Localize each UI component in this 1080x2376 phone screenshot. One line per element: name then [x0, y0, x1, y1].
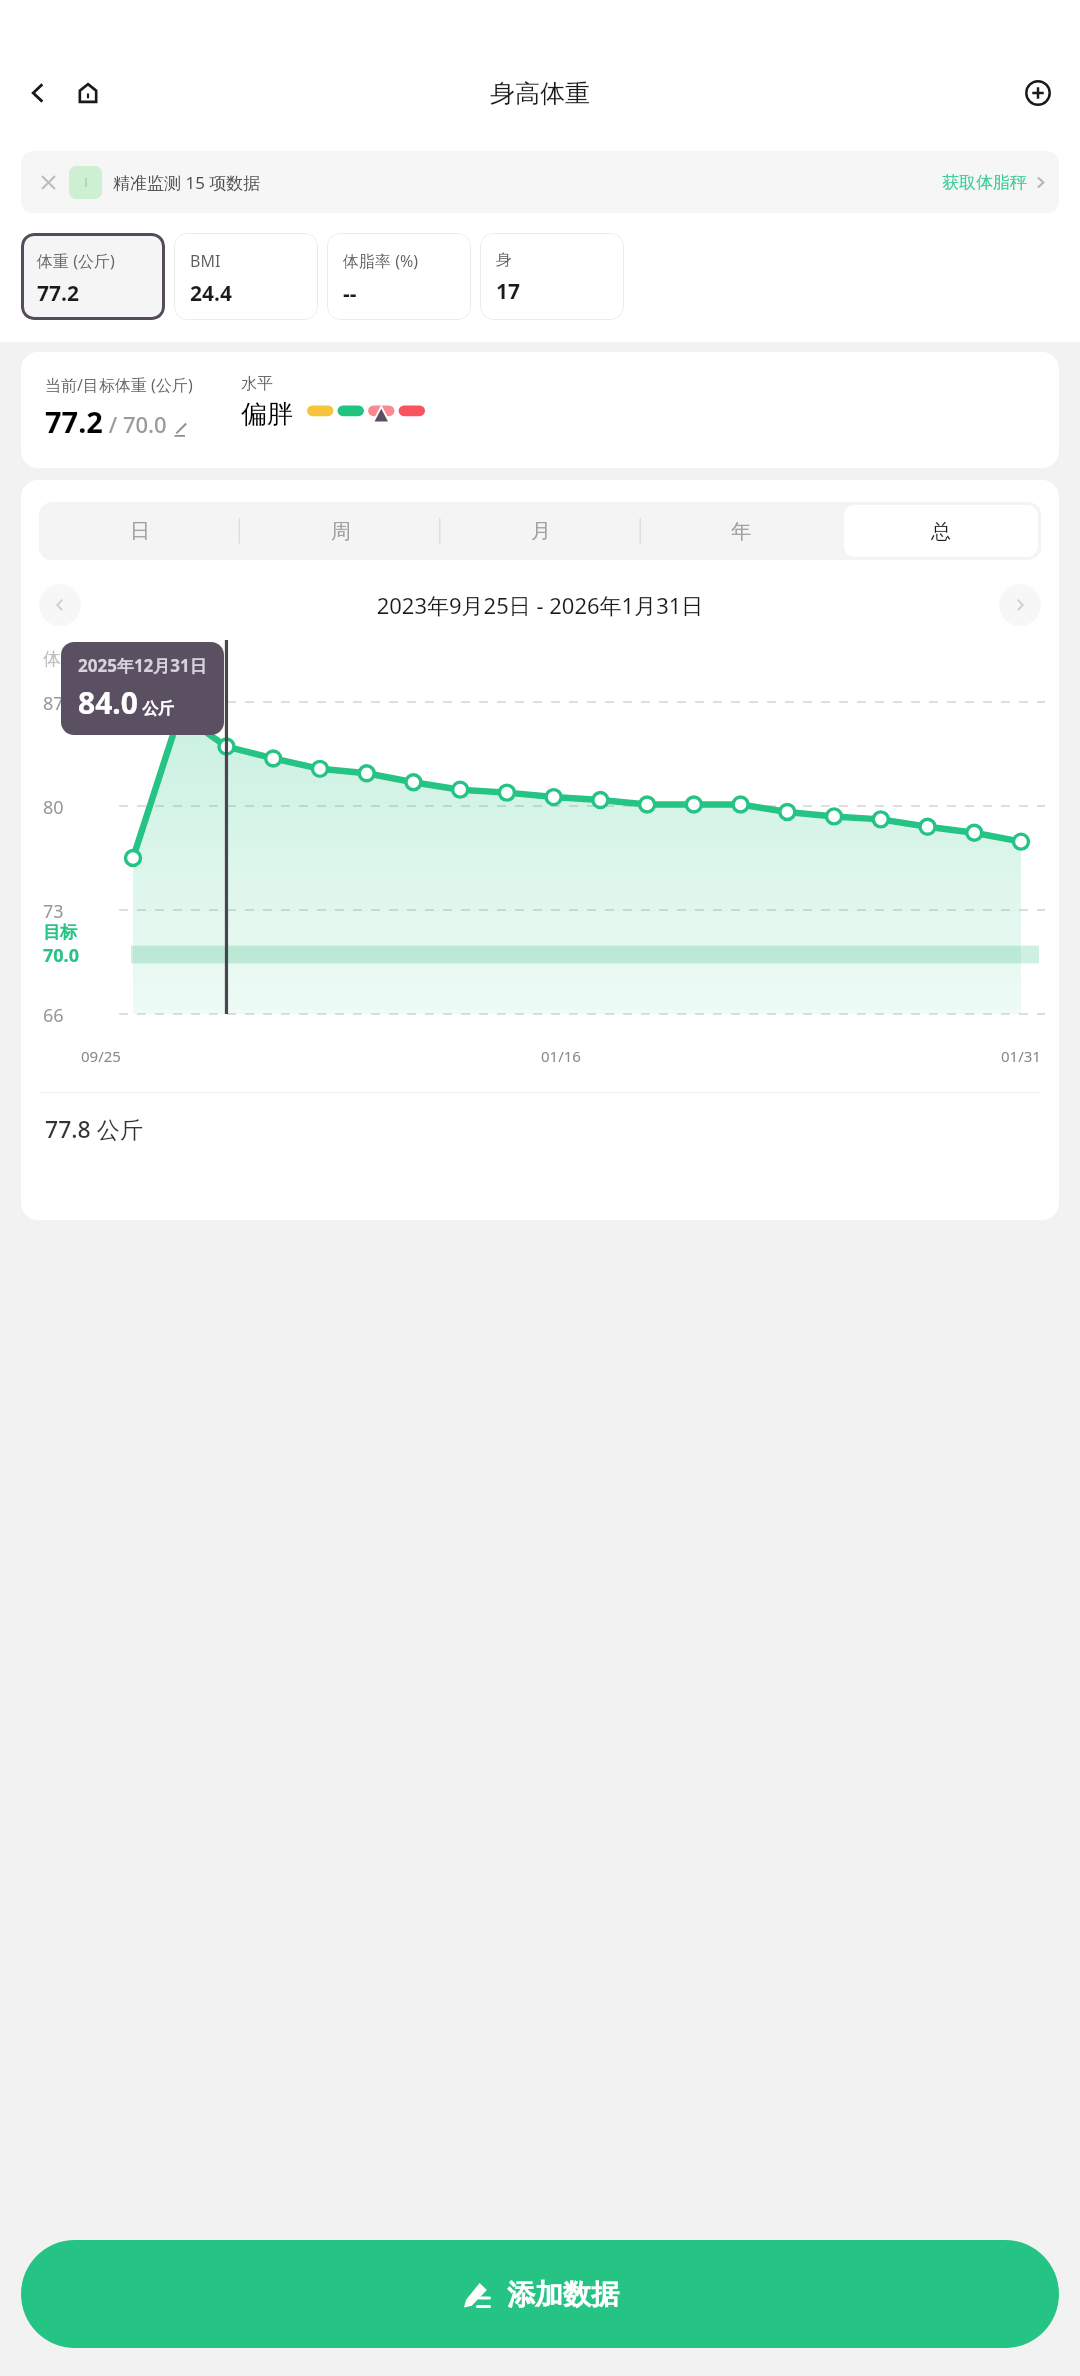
- button[interactable]: BMI: [174, 233, 318, 320]
- button[interactable]: Close: [33, 167, 63, 197]
- staticText: 66: [43, 1003, 64, 1028]
- staticText: 身: [496, 250, 512, 270]
- button[interactable]: Back: [16, 71, 60, 115]
- staticText: 17: [496, 277, 521, 306]
- staticText: 70.0: [43, 943, 79, 968]
- staticText: / 70.0: [103, 409, 167, 439]
- staticText: 年: [731, 519, 751, 544]
- staticText: 获取体脂秤: [942, 172, 1027, 193]
- staticText: 体重 (公斤): [37, 250, 115, 272]
- button[interactable]: Previous: [39, 584, 81, 626]
- staticText: --: [343, 279, 357, 308]
- staticText: 01/16: [541, 1046, 581, 1066]
- button[interactable]: 当前/目标体重 (公斤): [21, 352, 1059, 468]
- button[interactable]: 获取体脂秤: [942, 172, 1047, 193]
- staticText: 添加数据: [507, 2277, 619, 2312]
- button[interactable]: 周: [243, 505, 438, 557]
- staticText: 体脂率 (%): [343, 250, 419, 272]
- staticText: 77.2: [37, 279, 79, 308]
- button[interactable]: 月: [444, 505, 638, 557]
- staticText: 73: [43, 899, 64, 924]
- staticText: 总: [931, 519, 951, 544]
- staticText: 精准监测 15 项数据: [113, 171, 261, 194]
- staticText: 84.0: [78, 682, 138, 723]
- button[interactable]: Next: [999, 584, 1041, 626]
- button[interactable]: 添加数据: [21, 2240, 1059, 2348]
- button[interactable]: 总: [844, 505, 1038, 557]
- staticText: 偏胖: [241, 398, 293, 431]
- staticText: 2025年12月31日: [78, 654, 207, 677]
- staticText: 体重: [43, 648, 79, 671]
- staticText: 目标: [43, 922, 77, 943]
- staticText: 周: [331, 519, 351, 544]
- button[interactable]: 年: [644, 505, 838, 557]
- button[interactable]: 体脂率 (%): [327, 233, 471, 320]
- staticText: 2023年9月25日 - 2026年1月31日: [81, 590, 999, 620]
- staticText: 24.4: [190, 279, 232, 308]
- button[interactable]: Home: [66, 71, 110, 115]
- staticText: 当前/目标体重 (公斤): [45, 374, 193, 396]
- button[interactable]: Close: [21, 151, 1059, 213]
- button[interactable]: 体重 (公斤): [21, 233, 165, 320]
- button[interactable]: 身: [480, 233, 624, 320]
- staticText: 87: [43, 691, 64, 716]
- staticText: 水平: [241, 374, 273, 394]
- button[interactable]: Add: [1016, 71, 1060, 115]
- staticText: 公斤: [138, 697, 175, 719]
- staticText: 77.2: [45, 402, 103, 441]
- staticText: 01/31: [1001, 1046, 1041, 1066]
- staticText: 77.8 公斤: [45, 1113, 143, 1144]
- staticText: 月: [531, 519, 551, 544]
- button[interactable]: 日: [42, 505, 237, 557]
- staticText: 80: [43, 795, 64, 820]
- staticText: 09/25: [81, 1046, 121, 1066]
- button[interactable]: Edit target: [173, 422, 188, 437]
- staticText: 日: [130, 519, 150, 544]
- staticText: 身高体重: [490, 78, 590, 109]
- staticText: BMI: [190, 250, 221, 272]
